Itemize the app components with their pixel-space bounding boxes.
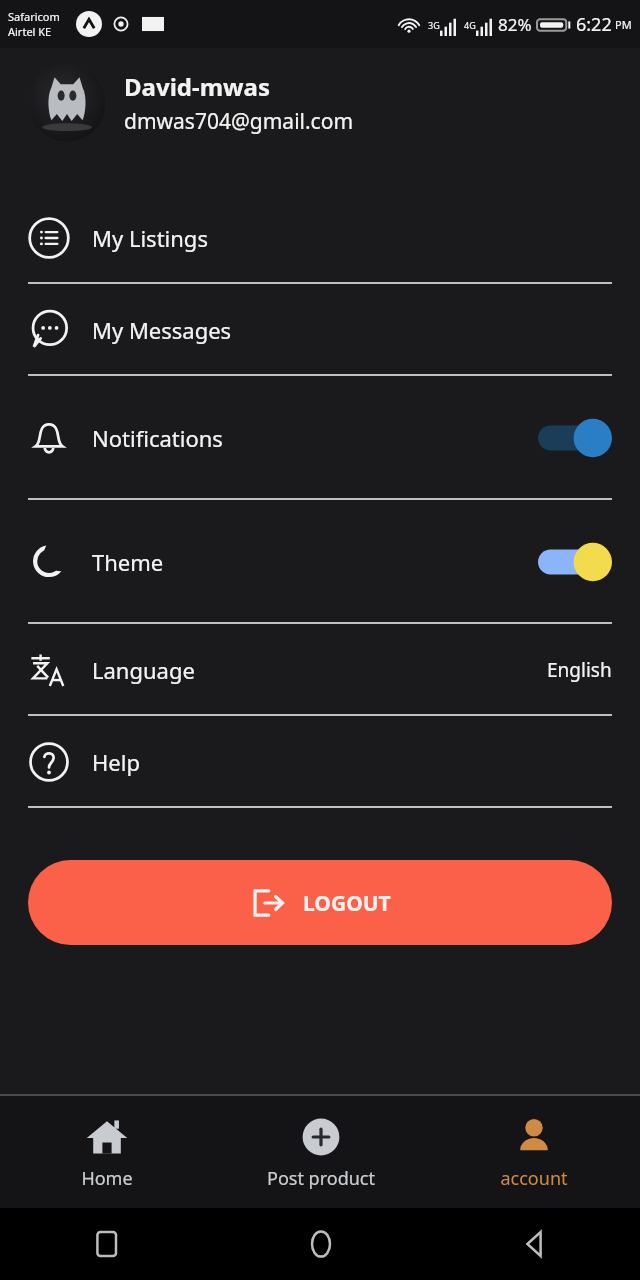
staticText: 4G	[464, 19, 476, 31]
staticText: David-mwas	[124, 70, 271, 103]
button[interactable]: Post product	[214, 1096, 427, 1208]
staticText: account	[500, 1166, 568, 1191]
button[interactable]	[538, 418, 612, 458]
staticText: 82%	[498, 13, 532, 36]
staticText: Post product	[267, 1166, 375, 1191]
button[interactable]: My Listings	[0, 194, 640, 282]
staticText: Safaricom	[8, 9, 60, 24]
button[interactable]: My Messages	[0, 286, 640, 374]
staticText: LOGOUT	[303, 889, 391, 918]
staticText: Home	[81, 1166, 133, 1191]
button[interactable]: Notifications	[0, 394, 640, 482]
staticText: dmwas704@gmail.com	[124, 107, 354, 136]
button[interactable]: account	[427, 1096, 640, 1208]
staticText: English	[547, 657, 612, 683]
button[interactable]	[538, 542, 612, 582]
other: account	[511, 1114, 557, 1160]
button[interactable]: Help	[0, 718, 640, 806]
staticText: My Messages	[92, 315, 232, 345]
other: Recents	[92, 1229, 122, 1259]
staticText: Notifications	[92, 423, 223, 453]
staticText: 3G	[428, 19, 440, 31]
staticText: Language	[92, 655, 195, 685]
staticText: Airtel KE	[8, 24, 52, 39]
other: Home	[306, 1229, 336, 1259]
staticText: PM	[615, 17, 632, 32]
button[interactable]: Language	[0, 626, 640, 714]
staticText: 6:22	[576, 12, 612, 37]
other: Home	[84, 1114, 130, 1160]
other: Post product	[298, 1114, 344, 1160]
button[interactable]: Theme	[0, 518, 640, 606]
other: Back	[519, 1229, 549, 1259]
staticText: Help	[92, 747, 140, 777]
button[interactable]: Home	[0, 1096, 214, 1208]
staticText: Theme	[92, 547, 164, 577]
button[interactable]: LOGOUT	[28, 860, 612, 945]
staticText: My Listings	[92, 223, 208, 253]
